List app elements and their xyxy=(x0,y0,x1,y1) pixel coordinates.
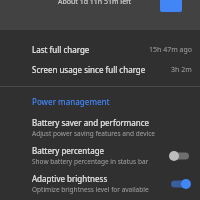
staticText: 3h 2m xyxy=(171,65,192,75)
staticText: Optimize brightness level for available … xyxy=(32,185,164,194)
button[interactable]: Toggle on xyxy=(168,176,192,192)
button[interactable]: Adaptive brightness xyxy=(0,166,200,194)
staticText: About 1d 11h 51m left xyxy=(58,0,132,7)
staticText: Battery percentage xyxy=(32,145,105,156)
staticText: Power management xyxy=(32,96,110,107)
staticText: 15h 47m ago xyxy=(149,45,192,55)
staticText: Last full charge xyxy=(32,44,90,55)
button[interactable]: Battery saver and performance xyxy=(0,110,200,138)
staticText: Show battery percentage in status bar xyxy=(32,157,149,166)
staticText: Battery saver and performance xyxy=(32,117,150,128)
button[interactable]: Battery percentage xyxy=(0,138,200,166)
button[interactable]: Screen usage since full charge xyxy=(0,55,200,75)
button[interactable]: Last full charge xyxy=(0,30,200,55)
staticText: Screen usage since full charge xyxy=(32,64,146,75)
button[interactable]: Toggle off xyxy=(168,148,192,164)
staticText: Adaptive brightness xyxy=(32,173,108,184)
staticText: Adjust power saving features and device … xyxy=(32,129,192,138)
